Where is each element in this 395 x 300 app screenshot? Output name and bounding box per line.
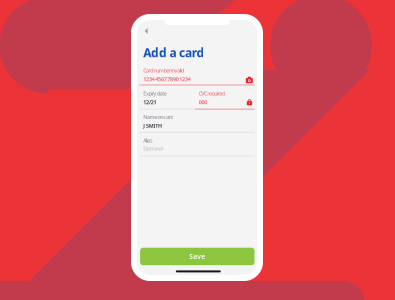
staticText: Expiry date <box>143 90 167 97</box>
staticText: Alias <box>143 137 153 144</box>
staticText: Card number invalid <box>143 67 184 74</box>
button[interactable]: Save <box>140 248 254 265</box>
staticText: 1234 4567 7890 1234 <box>143 76 191 83</box>
staticText: Name on card <box>143 113 173 120</box>
staticText: 000 <box>199 99 207 106</box>
staticText: Optional <box>143 145 164 152</box>
button[interactable]: Back <box>140 25 152 37</box>
staticText: CVC required <box>199 90 225 97</box>
staticText: 12/21 <box>143 99 156 106</box>
staticText: Add a card <box>143 45 204 61</box>
staticText: Save <box>189 252 205 261</box>
staticText: J SMITH <box>143 122 162 129</box>
